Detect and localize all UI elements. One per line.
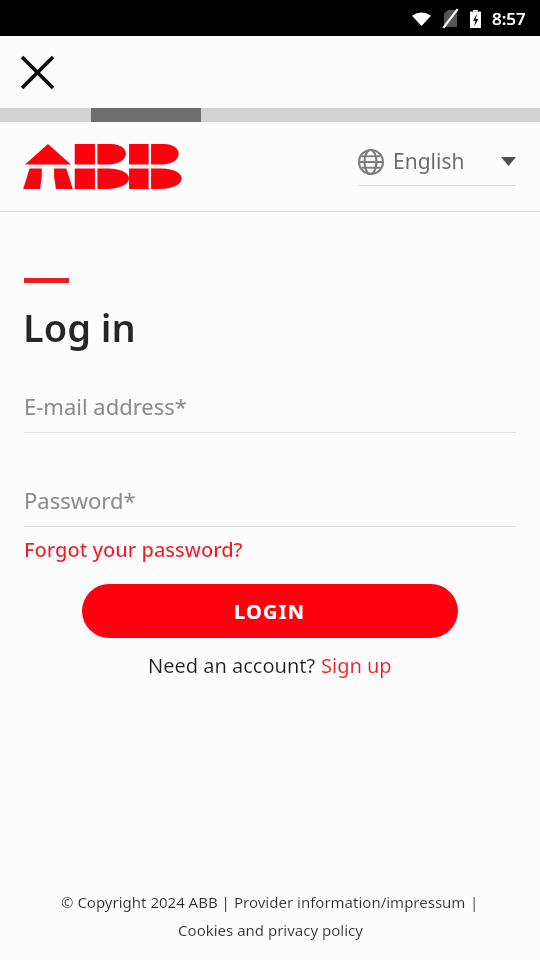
staticText: Need an account? [148, 652, 321, 679]
staticText: Provider information/impressum [234, 892, 466, 912]
staticText: Password* [24, 485, 136, 515]
staticText: Log in [23, 301, 136, 353]
staticText: LOGIN [234, 598, 306, 625]
button[interactable]: Password* [24, 485, 516, 527]
staticText: E-mail address* [24, 391, 187, 421]
button[interactable]: LOGIN [82, 584, 458, 638]
staticText: Sign up [321, 652, 392, 679]
staticText: English [393, 147, 465, 176]
button[interactable]: Provider information/impressum [234, 892, 466, 912]
staticText: © Copyright 2024 ABB | [61, 892, 234, 912]
staticText: | [466, 892, 479, 912]
staticText: Forgot your password? [24, 536, 243, 563]
staticText: 8:57 [492, 7, 526, 30]
button[interactable]: E-mail address* [24, 391, 516, 433]
button[interactable]: Forgot your password? [24, 536, 243, 563]
staticText: Cookies and privacy policy [178, 920, 363, 940]
button[interactable]: English [358, 147, 516, 186]
button[interactable]: Sign up [321, 652, 392, 679]
button[interactable]: Cookies and privacy policy [178, 920, 363, 940]
button[interactable]: Close [10, 45, 64, 99]
